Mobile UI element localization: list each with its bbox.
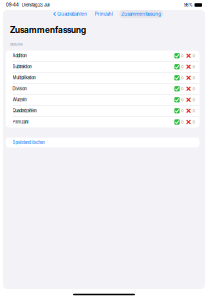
staticText: Zusammenfassung [10, 25, 86, 35]
staticText: 0 [181, 120, 183, 124]
staticText: 0 [181, 97, 183, 102]
button[interactable]: Quadratzahlen [6, 105, 199, 116]
staticText: Quadratzahlen [57, 11, 87, 17]
staticText: 0 [181, 75, 183, 80]
staticText: Quadratzahlen [13, 108, 37, 113]
staticText: Dienstag 23. Juli [22, 2, 50, 8]
staticText: Multiplikation [13, 75, 36, 80]
staticText: Subtraktion [13, 64, 32, 69]
staticText: 0 [181, 53, 183, 58]
staticText: 0 [192, 86, 194, 91]
staticText: 0 [192, 120, 194, 124]
staticText: Spielstand löschen [13, 140, 45, 145]
button[interactable]: Primzahl [87, 11, 113, 17]
staticText: 0 [192, 97, 194, 102]
button[interactable]: Zusammenfassung [113, 10, 163, 18]
staticText: 0 [181, 64, 183, 69]
staticText: Zusammenfassung [121, 11, 161, 17]
staticText: 98 % [184, 2, 193, 8]
staticText: 0 [192, 64, 194, 69]
button[interactable]: Multiplikation [6, 72, 199, 83]
button[interactable]: Primzahl [6, 116, 199, 127]
button[interactable]: Addition [6, 50, 199, 61]
staticText: 0 [181, 86, 183, 91]
button[interactable]: Spielstand löschen [6, 137, 199, 147]
staticText: Division [13, 86, 27, 91]
staticText: 0 [192, 108, 194, 113]
staticText: 0 [192, 53, 194, 58]
staticText: Wurzeln [13, 97, 27, 102]
staticText: 0 [192, 75, 194, 80]
staticText: Statistik [10, 42, 23, 46]
staticText: 09:44 [6, 2, 19, 8]
staticText: 0 [181, 108, 183, 113]
button[interactable]: Quadratzahlen [54, 11, 87, 17]
button[interactable]: Wurzeln [6, 94, 199, 105]
staticText: Addition [13, 53, 27, 58]
button[interactable]: Subtraktion [6, 61, 199, 72]
staticText: Primzahl [13, 119, 29, 125]
staticText: Primzahl [95, 11, 113, 17]
button[interactable]: Division [6, 83, 199, 94]
